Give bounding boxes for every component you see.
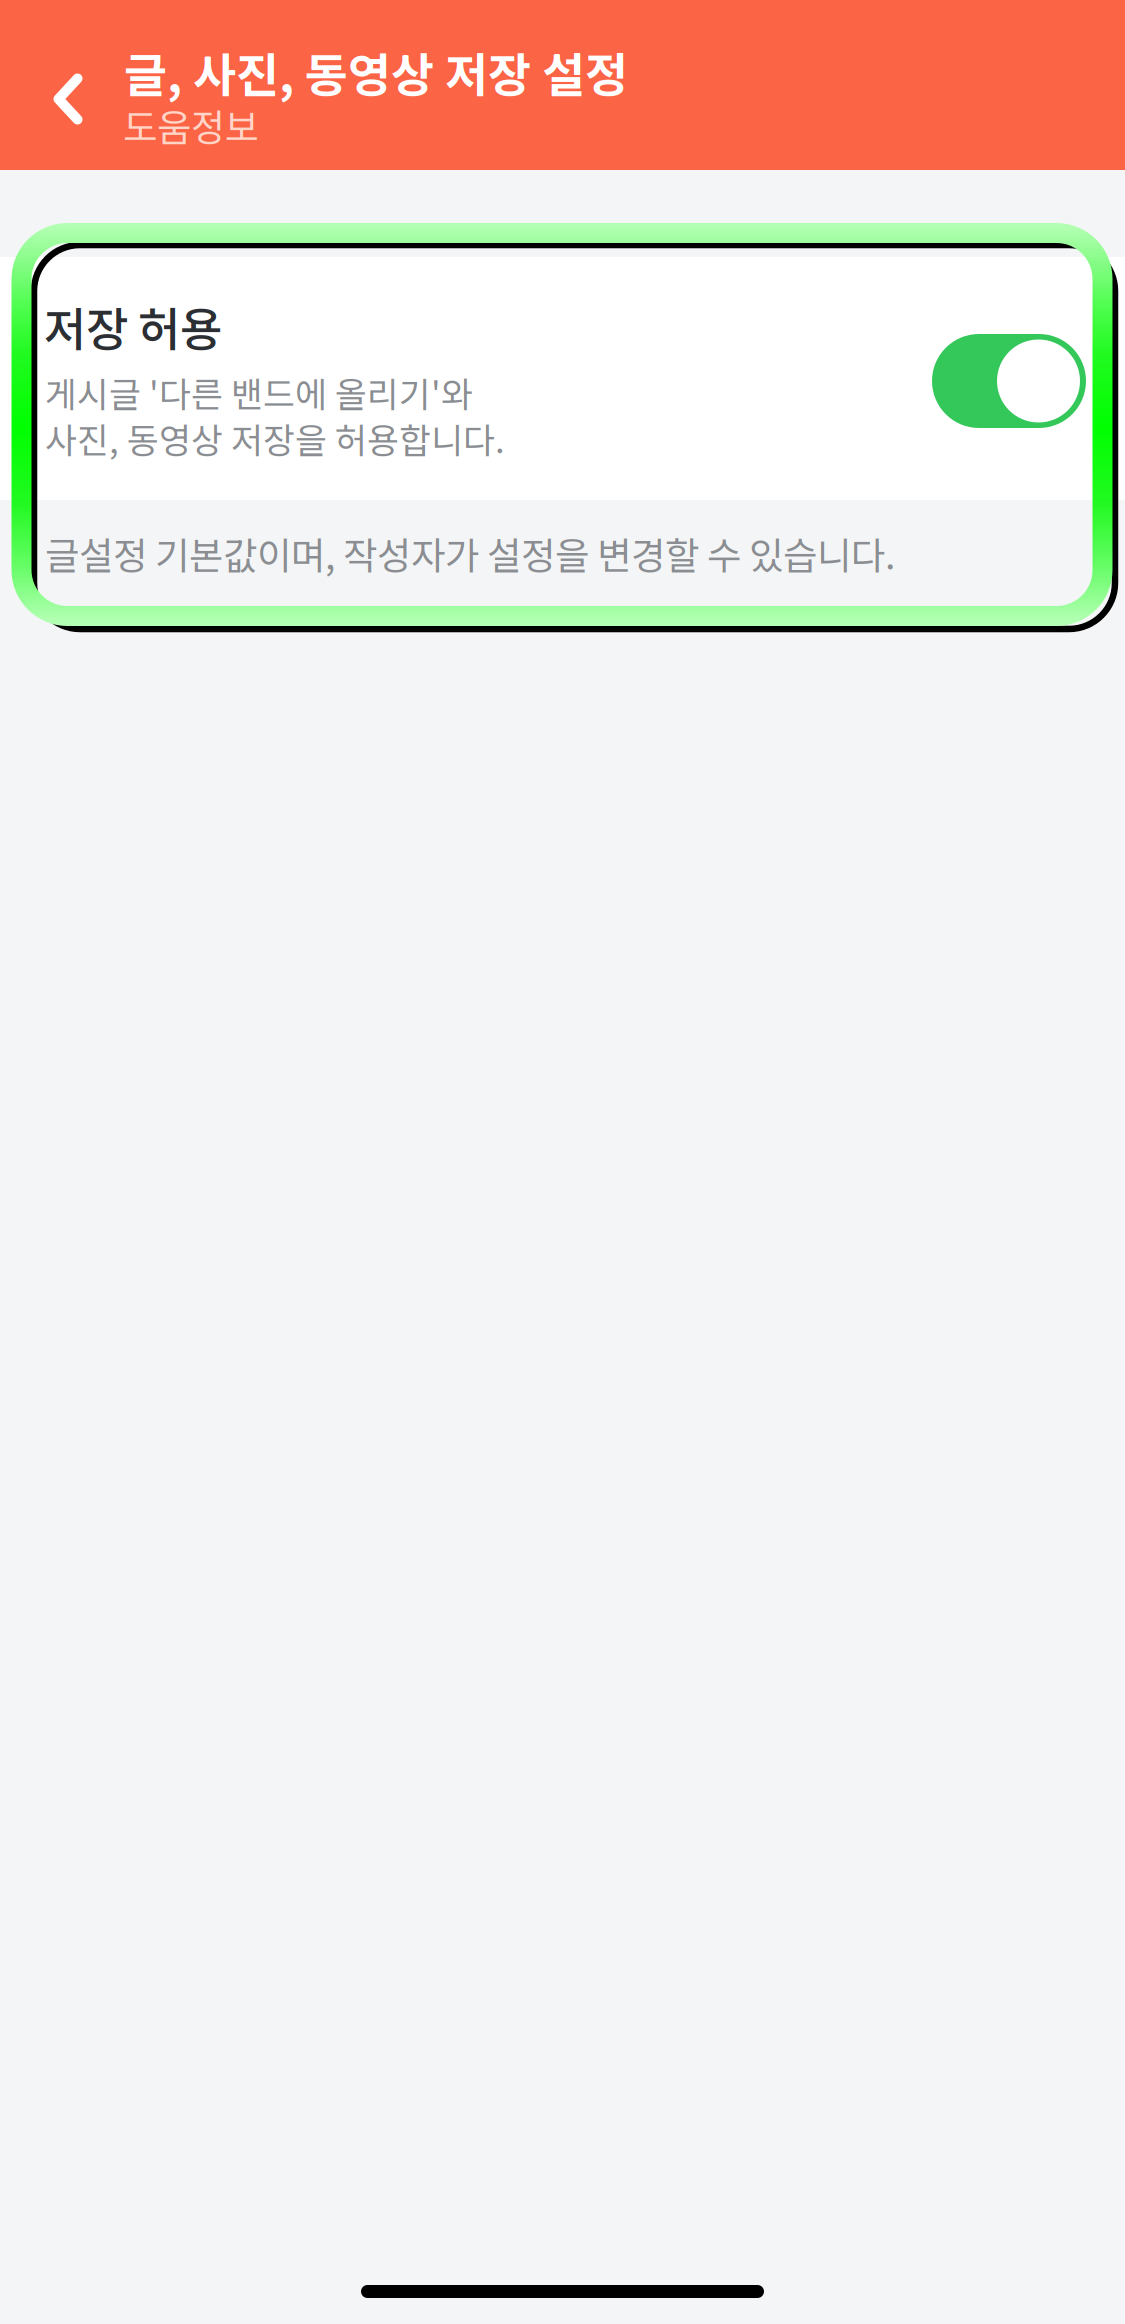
staticText: 글, 사진, 동영상 저장 설정 [124, 38, 628, 106]
button[interactable]: 저장 허용 [932, 334, 1086, 428]
button[interactable]: 뒤로 [20, 35, 116, 163]
staticText: 도움정보 [123, 98, 259, 152]
staticText: 글설정 기본값이며, 작성자가 설정을 변경할 수 있습니다. [45, 526, 895, 580]
staticText: 저장 허용 [44, 293, 222, 360]
staticText: 사진, 동영상 저장을 허용합니다. [45, 413, 505, 463]
staticText: 게시글 '다른 밴드에 올리기'와 [45, 367, 473, 417]
